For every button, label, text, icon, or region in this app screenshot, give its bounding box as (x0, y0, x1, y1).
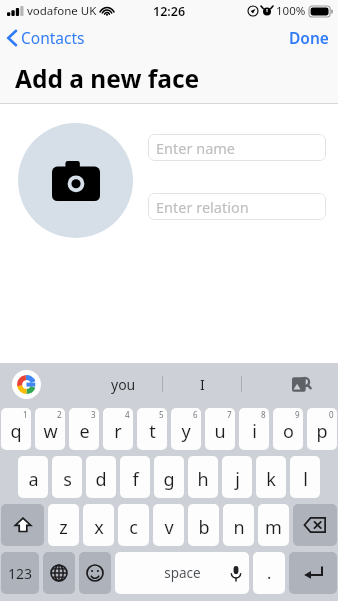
button[interactable]: l (290, 456, 320, 498)
button[interactable]: Backspace (293, 504, 337, 546)
button[interactable]: Google (12, 370, 41, 399)
staticText: Done (289, 27, 329, 48)
button[interactable]: Search stickers (286, 369, 316, 399)
button[interactable]: n (223, 504, 254, 546)
button[interactable]: Change keyboard language (43, 552, 75, 594)
staticText: 1 (23, 409, 28, 420)
staticText: . (267, 562, 272, 584)
button[interactable]: Take photo (18, 123, 133, 238)
staticText: y (181, 419, 191, 444)
button[interactable]: c (118, 504, 149, 546)
staticText: Enter name (156, 138, 236, 158)
button[interactable]: t (137, 408, 167, 450)
staticText: i (252, 419, 257, 444)
button[interactable]: a (18, 456, 48, 498)
button[interactable]: . (253, 552, 285, 594)
staticText: Add a new face (15, 62, 200, 95)
button[interactable]: Emoji (79, 552, 111, 594)
staticText: o (283, 419, 294, 444)
button[interactable]: I (163, 363, 241, 405)
button[interactable]: you (85, 363, 162, 405)
staticText: 123 (8, 564, 33, 583)
staticText: t (149, 419, 156, 444)
staticText: 3 (91, 409, 96, 420)
button[interactable]: q (1, 408, 31, 450)
staticText: g (163, 467, 175, 492)
staticText: h (197, 467, 209, 492)
staticText: d (95, 467, 107, 492)
staticText: Enter relation (156, 197, 249, 217)
staticText: vodafone UK (27, 3, 97, 19)
staticText: a (28, 467, 39, 492)
button[interactable]: k (256, 456, 286, 498)
staticText: z (59, 515, 68, 540)
staticText: r (114, 419, 122, 444)
staticText: 9 (295, 409, 300, 420)
staticText: 100% (276, 3, 306, 19)
staticText: k (266, 467, 276, 492)
button[interactable]: x (83, 504, 114, 546)
button[interactable]: m (258, 504, 289, 546)
staticText: l (303, 467, 308, 492)
staticText: q (10, 419, 22, 444)
button[interactable]: p (307, 408, 337, 450)
staticText: 6 (193, 409, 198, 420)
staticText: 0 (329, 409, 334, 420)
staticText: you (111, 375, 136, 394)
staticText: 2 (57, 409, 62, 420)
button[interactable]: h (188, 456, 218, 498)
staticText: v (164, 515, 174, 540)
button[interactable]: Enter name (148, 134, 326, 161)
button[interactable]: w (35, 408, 65, 450)
staticText: 4 (125, 409, 130, 420)
staticText: m (265, 515, 282, 540)
button[interactable]: z (48, 504, 79, 546)
button[interactable]: r (103, 408, 133, 450)
button[interactable]: 123 (1, 552, 39, 594)
button[interactable]: d (86, 456, 116, 498)
staticText: 8 (261, 409, 266, 420)
staticText: b (198, 515, 210, 540)
button[interactable]: e (69, 408, 99, 450)
staticText: 7 (227, 409, 232, 420)
button[interactable]: o (273, 408, 303, 450)
button[interactable]: y (171, 408, 201, 450)
button[interactable]: g (154, 456, 184, 498)
button[interactable]: Done (280, 23, 338, 52)
staticText: Contacts (21, 27, 85, 48)
button[interactable]: v (153, 504, 184, 546)
staticText: w (43, 419, 58, 444)
staticText: f (132, 467, 139, 492)
staticText: 12:26 (153, 3, 186, 20)
button[interactable]: i (239, 408, 269, 450)
staticText: u (214, 419, 226, 444)
button[interactable]: Enter relation (148, 193, 326, 220)
button[interactable]: f (120, 456, 150, 498)
button[interactable]: Contacts (0, 24, 93, 51)
staticText: s (63, 467, 72, 492)
button[interactable]: space (115, 552, 249, 594)
button[interactable]: j (222, 456, 252, 498)
button[interactable]: b (188, 504, 219, 546)
button[interactable]: s (52, 456, 82, 498)
button[interactable]: Shift (1, 504, 44, 546)
staticText: x (94, 515, 104, 540)
staticText: p (316, 419, 328, 444)
button[interactable]: Enter (289, 552, 337, 594)
staticText: 5 (159, 409, 164, 420)
button[interactable]: u (205, 408, 235, 450)
staticText: I (200, 375, 205, 394)
staticText: n (233, 515, 245, 540)
staticText: j (235, 467, 240, 492)
staticText: space (164, 564, 201, 582)
staticText: c (129, 515, 138, 540)
staticText: e (79, 419, 90, 444)
